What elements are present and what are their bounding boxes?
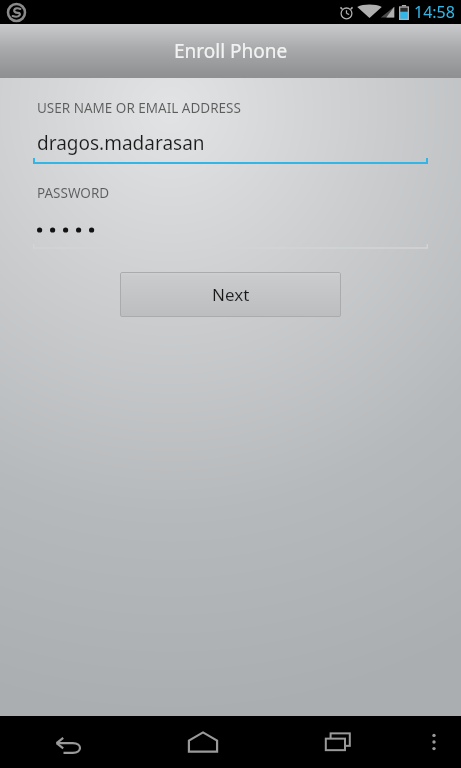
button[interactable]: dragos.madarasan (0, 129, 461, 165)
staticText: dragos.madarasan (37, 130, 205, 156)
staticText: Enroll Phone (174, 38, 288, 64)
button[interactable]: Back (0, 716, 135, 768)
staticText: 14:58 (414, 1, 455, 23)
staticText: USER NAME OR EMAIL ADDRESS (37, 99, 241, 117)
staticText: PASSWORD (37, 184, 110, 202)
staticText: Next (212, 283, 250, 306)
button[interactable]: More options (407, 716, 461, 768)
button[interactable]: Recent apps (271, 716, 407, 768)
button[interactable] (0, 216, 461, 250)
button[interactable]: Next (120, 272, 341, 317)
button[interactable]: Home (135, 716, 271, 768)
